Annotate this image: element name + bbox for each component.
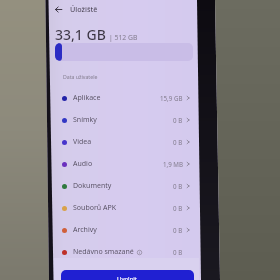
staticText: | 512 GB: [109, 33, 138, 42]
button[interactable]: Souborů APK: [49, 197, 199, 219]
staticText: 1,9 MB: [163, 160, 183, 168]
button[interactable]: Uvolnit: [61, 270, 194, 280]
staticText: 0 B: [173, 182, 183, 190]
other: Back: [54, 5, 63, 14]
staticText: 33,1 GB: [55, 25, 106, 44]
staticText: 0 B: [173, 226, 183, 234]
staticText: 0 B: [173, 204, 183, 212]
staticText: Videa: [73, 137, 92, 147]
staticText: Aplikace: [73, 93, 101, 103]
button[interactable]: Aplikace: [49, 87, 199, 109]
staticText: 0 B: [173, 248, 183, 256]
staticText: Audio: [73, 159, 93, 169]
staticText: 15,9 GB: [160, 94, 183, 102]
button[interactable]: Dokumenty: [49, 175, 199, 197]
button[interactable]: Back: [49, 0, 199, 18]
staticText: Snímky: [73, 115, 97, 125]
button[interactable]: Snímky: [49, 109, 199, 131]
button[interactable]: Videa: [49, 131, 199, 153]
staticText: Souborů APK: [73, 203, 117, 213]
button[interactable]: Nedávno smazané: [49, 241, 199, 263]
staticText: Úložiště: [70, 4, 98, 14]
staticText: Archivy: [73, 225, 97, 235]
button[interactable]: Archivy: [49, 219, 199, 241]
staticText: Uvolnit: [117, 275, 138, 280]
staticText: Data uživatele: [63, 73, 98, 80]
staticText: 0 B: [173, 116, 183, 124]
button[interactable]: Audio: [49, 153, 199, 175]
staticText: Dokumenty: [73, 181, 112, 191]
staticText: 0 B: [173, 138, 183, 146]
staticText: Nedávno smazané: [73, 247, 134, 257]
